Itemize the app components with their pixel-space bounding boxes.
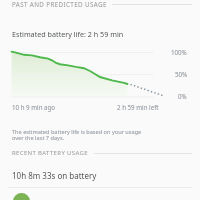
staticText: 10 h 9 min ago bbox=[12, 103, 56, 111]
staticText: RECENT BATTERY USAGE bbox=[12, 149, 88, 157]
staticText: PAST AND PREDICTED USAGE bbox=[12, 0, 107, 9]
staticText: 10h 8m 33s on battery bbox=[12, 170, 97, 181]
staticText: 50% bbox=[175, 70, 188, 78]
button[interactable] bbox=[0, 188, 200, 200]
staticText: 100% bbox=[171, 48, 187, 56]
staticText: Estimated battery life: 2 h 59 min bbox=[12, 29, 124, 39]
staticText: 2 h 59 min left bbox=[117, 103, 159, 111]
staticText: 0% bbox=[178, 92, 187, 100]
staticText: The estimated battery life is based on y… bbox=[12, 128, 142, 142]
